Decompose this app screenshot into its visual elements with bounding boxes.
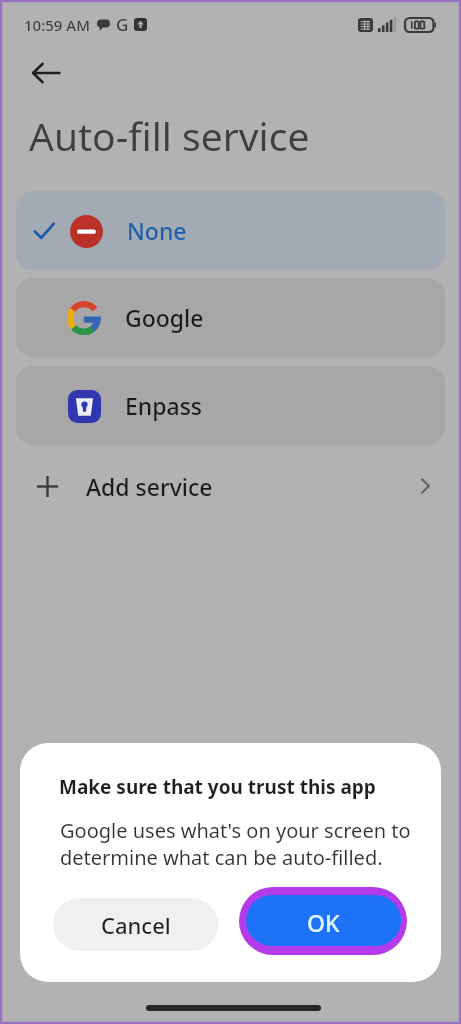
button[interactable]: Back — [22, 49, 70, 97]
staticText: G — [116, 13, 129, 36]
staticText: 10:59 AM — [24, 15, 90, 35]
staticText: Cancel — [101, 910, 171, 940]
button[interactable]: Cancel — [53, 898, 218, 951]
staticText: Google — [125, 302, 204, 333]
button[interactable]: Add service — [0, 455, 461, 517]
button[interactable]: OK — [239, 887, 407, 955]
button[interactable]: Google — [16, 278, 445, 357]
staticText: Auto-fill service — [29, 109, 310, 162]
staticText: None — [127, 215, 187, 246]
staticText: Make sure that you trust this app — [59, 774, 376, 800]
staticText: Google uses what's on your screen to det… — [60, 817, 411, 871]
button[interactable]: Enpass — [16, 366, 445, 445]
staticText: Enpass — [125, 390, 203, 421]
button[interactable]: None — [16, 191, 445, 270]
staticText: OK — [307, 907, 340, 938]
staticText: Add service — [86, 471, 213, 502]
